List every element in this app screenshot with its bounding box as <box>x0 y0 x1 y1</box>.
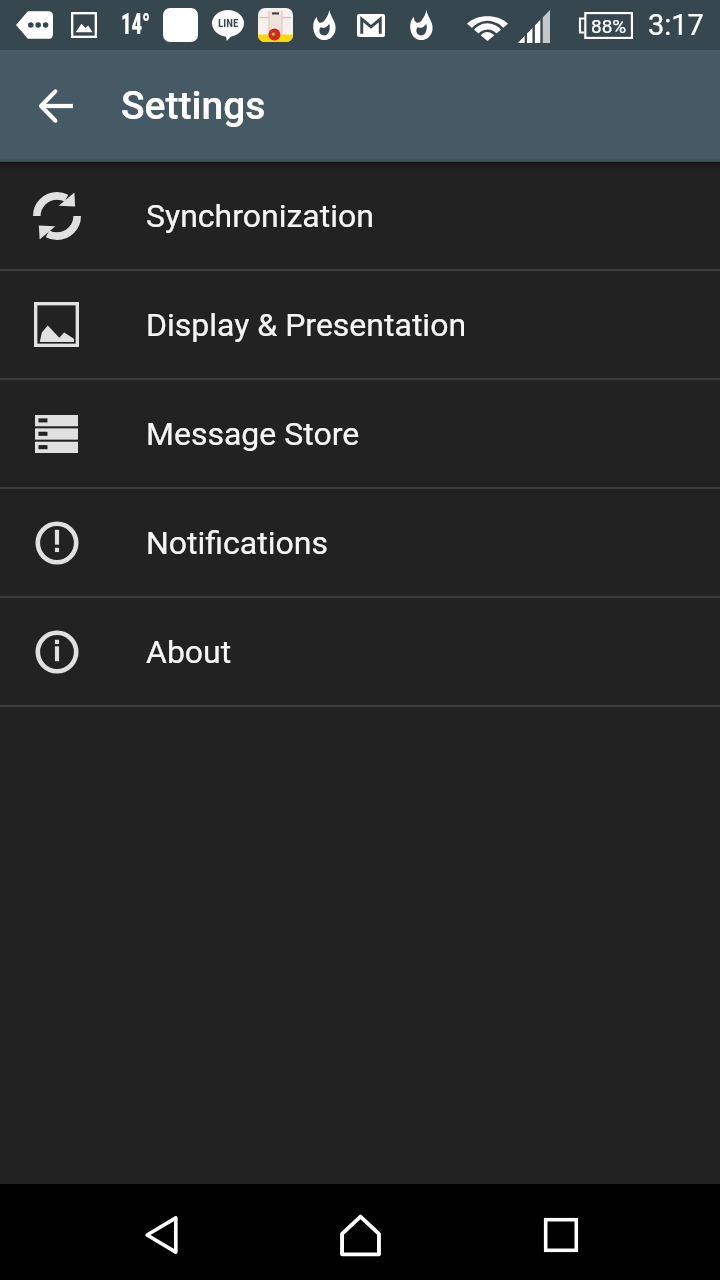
staticText: Message Store <box>146 415 360 453</box>
staticText: Synchronization <box>146 197 374 235</box>
button[interactable]: About <box>0 598 720 705</box>
staticText: Display & Presentation <box>146 306 467 344</box>
staticText: LINE <box>218 17 239 30</box>
staticText: 3:17 <box>648 8 704 42</box>
button[interactable]: Display & Presentation <box>0 271 720 378</box>
button[interactable]: Navigate up <box>22 72 90 140</box>
staticText: 88% <box>591 15 627 37</box>
button[interactable]: Notifications <box>0 489 720 596</box>
staticText: 14° <box>121 7 150 41</box>
button[interactable]: Home <box>310 1187 410 1280</box>
button[interactable]: Back <box>112 1187 212 1280</box>
staticText: Notifications <box>146 524 328 562</box>
button[interactable]: Recent apps <box>511 1187 611 1280</box>
staticText: Settings <box>121 83 266 129</box>
button[interactable]: Message Store <box>0 380 720 487</box>
staticText: About <box>146 633 232 671</box>
button[interactable]: Synchronization <box>0 162 720 269</box>
